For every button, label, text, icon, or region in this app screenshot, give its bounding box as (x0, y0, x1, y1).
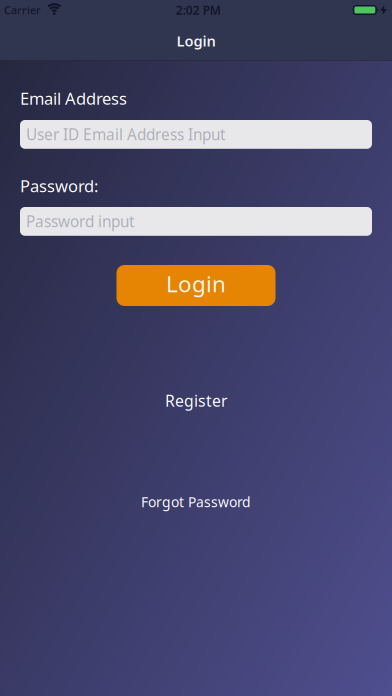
staticText: Forgot Password (141, 492, 251, 511)
staticText: User ID Email Address Input (26, 124, 226, 145)
staticText: 2:02 PM (176, 2, 221, 18)
staticText: Password input (26, 211, 135, 232)
button[interactable]: Forgot Password (0, 492, 392, 511)
staticText: Password: (20, 174, 98, 197)
staticText: Email Address (20, 87, 127, 109)
button[interactable]: Register (0, 390, 392, 411)
staticText: Register (165, 390, 227, 411)
staticText: Login (176, 31, 215, 50)
staticText: Carrier (4, 3, 41, 17)
button[interactable]: Login (116, 265, 275, 306)
staticText: Login (166, 268, 226, 299)
